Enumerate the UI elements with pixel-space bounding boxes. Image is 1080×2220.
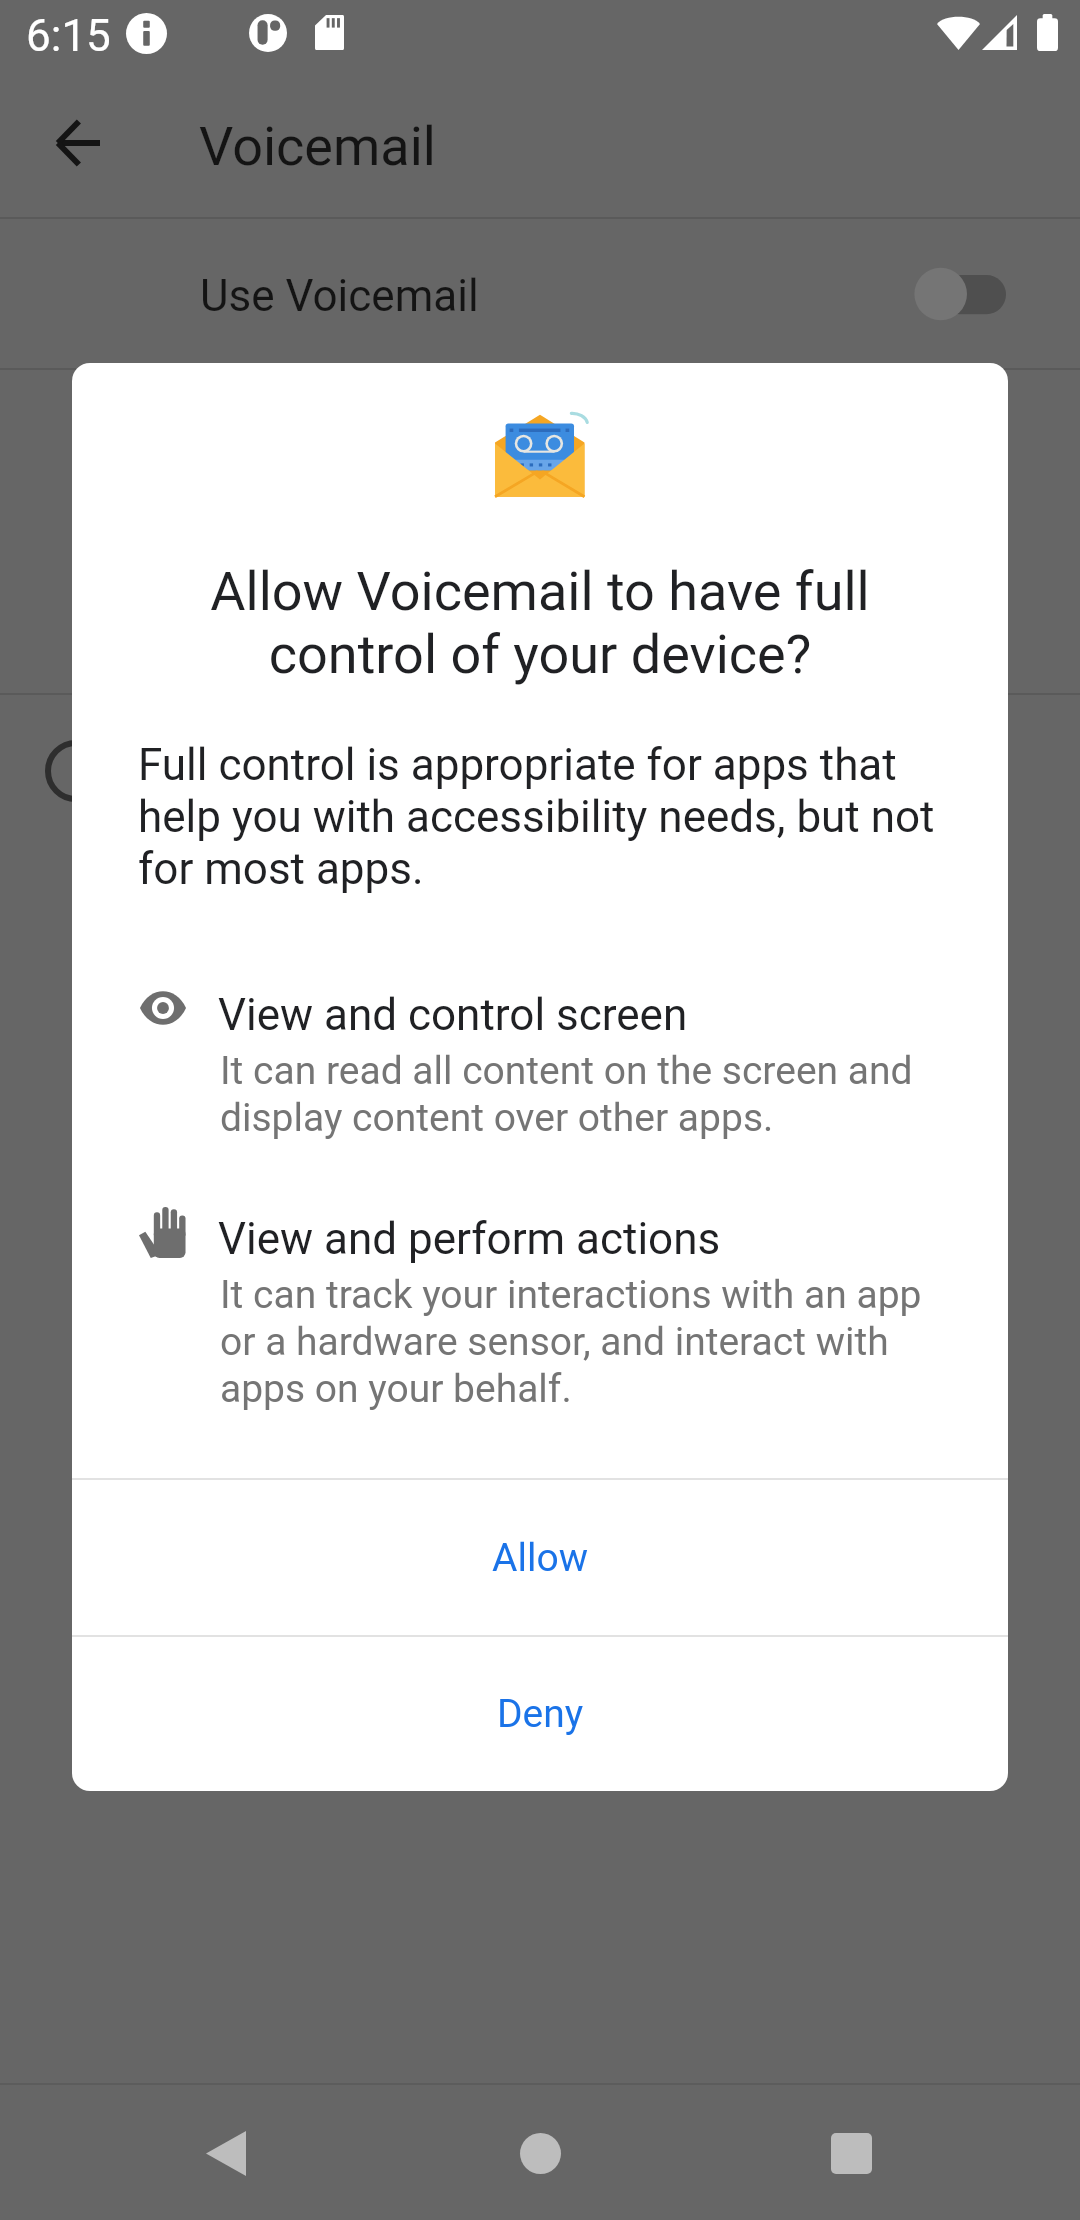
button[interactable]: Use Voicemail	[0, 219, 1080, 368]
button[interactable]: Allow	[72, 1480, 1008, 1635]
button[interactable]: Deny	[72, 1637, 1008, 1791]
button[interactable]: Back	[176, 2103, 276, 2203]
staticText: Allow	[492, 1535, 588, 1581]
staticText: Voicemail	[199, 115, 436, 179]
staticText: Deny	[497, 1691, 584, 1737]
staticText: Allow Voicemail to have full control of …	[140, 560, 940, 686]
staticText: View and control screen	[218, 989, 688, 1041]
staticText: View and perform actions	[218, 1213, 721, 1265]
staticText: Use Voicemail	[200, 270, 479, 322]
staticText: Full control is appropriate for apps tha…	[138, 739, 938, 895]
button[interactable]: Recent apps	[801, 2103, 901, 2203]
staticText: It can read all content on the screen an…	[220, 1047, 940, 1141]
staticText: It can track your interactions with an a…	[220, 1271, 940, 1412]
staticText: 6:15	[26, 10, 111, 62]
button[interactable]: Home	[490, 2103, 590, 2203]
button[interactable]: Navigate up	[44, 109, 110, 176]
